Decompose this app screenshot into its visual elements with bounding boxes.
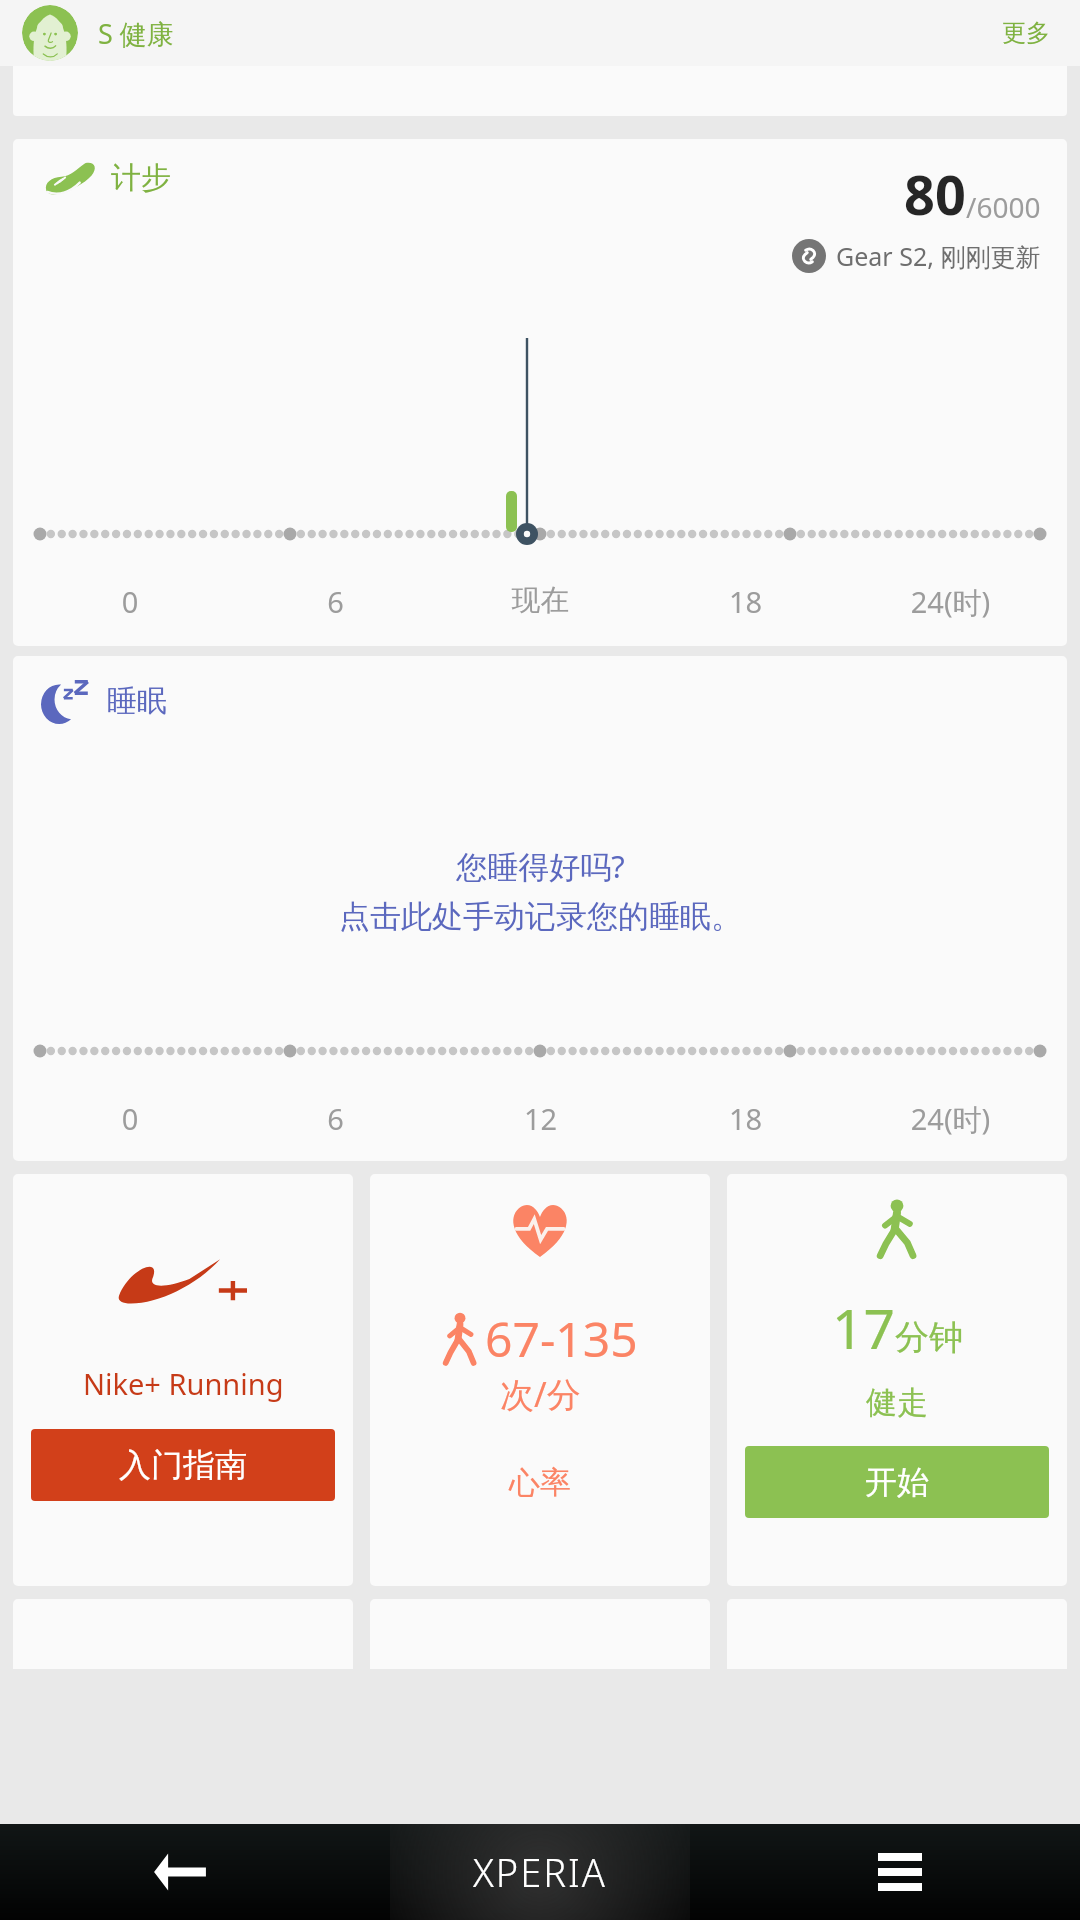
staticText: Gear S2, 刚刚更新 (836, 239, 1041, 273)
button[interactable]: Profile (22, 5, 78, 61)
staticText: 12 (438, 1099, 643, 1138)
staticText: 24(时) (848, 582, 1053, 622)
button[interactable]: 入门指南 (31, 1429, 335, 1501)
staticText: 睡眠 (107, 682, 167, 720)
staticText: 6 (233, 582, 438, 621)
staticText: 更多 (1002, 18, 1050, 48)
staticText: 0 (27, 1099, 233, 1138)
staticText: 分钟 (895, 1316, 963, 1359)
staticText: 计步 (111, 159, 171, 197)
button[interactable]: 开始 (745, 1446, 1049, 1518)
button[interactable]: Nike+ Running (13, 1174, 353, 1586)
button[interactable]: Back (0, 1824, 360, 1920)
staticText: 开始 (865, 1462, 929, 1502)
button[interactable]: Home (360, 1824, 720, 1920)
staticText: 点击此处手动记录您的睡眠。 (339, 897, 742, 936)
staticText: 80 (904, 157, 966, 231)
staticText: 24(时) (848, 1099, 1053, 1139)
staticText: 心率 (509, 1463, 571, 1502)
button[interactable]: 67-135 (370, 1174, 710, 1586)
staticText: /6000 (966, 188, 1041, 226)
staticText: 0 (27, 582, 233, 621)
staticText: 18 (643, 1099, 848, 1138)
staticText: 67-135 (485, 1306, 638, 1371)
staticText: 现在 (438, 582, 643, 619)
staticText: 17 (832, 1290, 895, 1365)
button[interactable]: 计步 (13, 139, 1067, 646)
button[interactable]: 更多 (986, 6, 1066, 60)
staticText: 健走 (866, 1383, 928, 1422)
staticText: 6 (233, 1099, 438, 1138)
button[interactable]: 17 (727, 1174, 1067, 1586)
staticText: 次/分 (500, 1371, 581, 1417)
button[interactable]: Recent apps (720, 1824, 1080, 1920)
staticText: S 健康 (98, 15, 174, 52)
button[interactable]: 睡眠 (13, 656, 1067, 1161)
staticText: Nike+ Running (83, 1364, 284, 1403)
staticText: XPERIA (473, 1846, 607, 1898)
staticText: 您睡得好吗? (456, 845, 625, 887)
staticText: 18 (643, 582, 848, 621)
staticText: 入门指南 (119, 1445, 247, 1485)
